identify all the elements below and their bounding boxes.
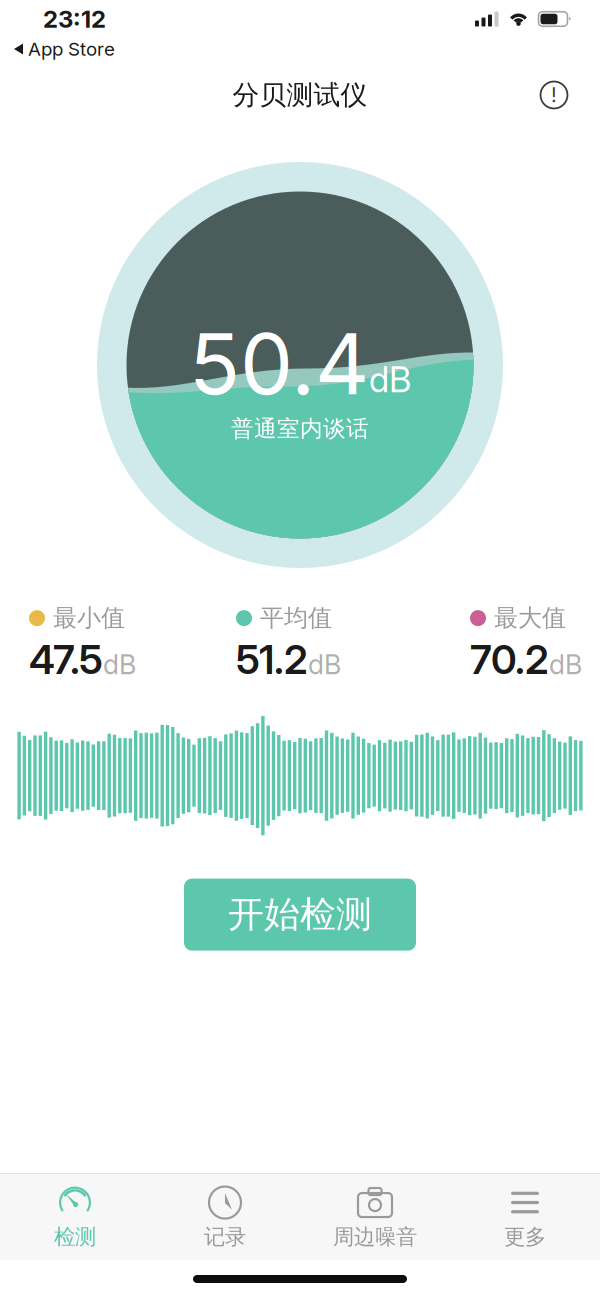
staticText: 分贝测试仪	[232, 78, 367, 112]
button[interactable]: 更多	[450, 1178, 600, 1256]
staticText: 更多	[504, 1224, 546, 1250]
staticText: dB	[308, 648, 341, 681]
staticText: App Store	[28, 38, 115, 60]
staticText: 最小值	[53, 603, 125, 633]
staticText: dB	[103, 648, 136, 681]
staticText: 最大值	[494, 603, 566, 633]
staticText: 检测	[54, 1224, 96, 1250]
staticText: 周边噪音	[333, 1224, 417, 1250]
staticText: 47.5	[29, 635, 103, 684]
staticText: 70.2	[470, 635, 549, 684]
staticText: 51.2	[236, 635, 308, 684]
staticText: dB	[369, 359, 411, 400]
button[interactable]: 检测	[0, 1178, 150, 1256]
button[interactable]: 记录	[150, 1178, 300, 1256]
staticText: 普通室内谈话	[231, 414, 369, 443]
button[interactable]: Info	[534, 75, 574, 115]
staticText: 平均值	[260, 603, 332, 633]
button[interactable]: App Store	[0, 36, 125, 62]
staticText: 23:12	[43, 4, 106, 33]
button[interactable]: 开始检测	[184, 879, 416, 951]
staticText: 记录	[204, 1224, 246, 1250]
staticText: 50.4	[189, 313, 369, 414]
button[interactable]: 周边噪音	[300, 1178, 450, 1256]
staticText: dB	[549, 648, 582, 681]
staticText: !	[551, 83, 557, 107]
staticText: 开始检测	[228, 892, 372, 937]
